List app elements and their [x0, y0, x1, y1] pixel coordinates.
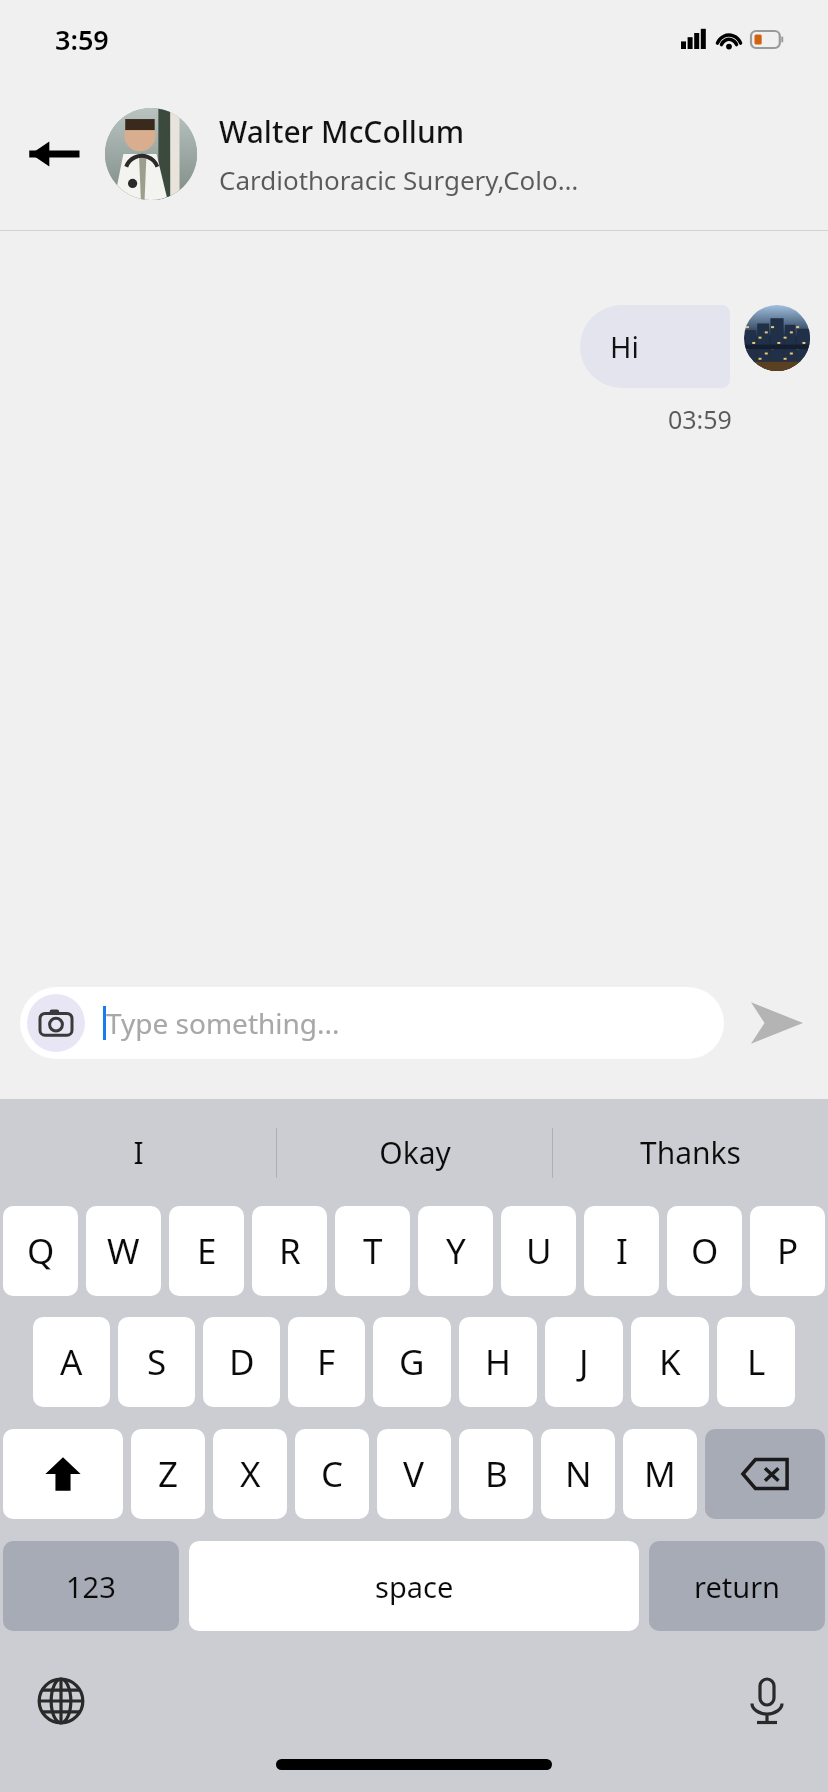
staticText: T — [363, 1227, 383, 1275]
button[interactable]: G — [373, 1317, 451, 1407]
button[interactable]: O — [667, 1206, 742, 1296]
button[interactable]: S — [118, 1317, 195, 1407]
staticText: W — [107, 1227, 140, 1275]
button[interactable]: C — [295, 1429, 369, 1519]
button[interactable]: P — [750, 1206, 825, 1296]
staticText: Z — [158, 1450, 179, 1498]
button[interactable]: Back — [0, 78, 105, 230]
button[interactable]: V — [377, 1429, 451, 1519]
staticText: Y — [446, 1227, 466, 1275]
staticText: A — [60, 1338, 83, 1386]
staticText: F — [317, 1338, 336, 1386]
button[interactable]: T — [335, 1206, 410, 1296]
button[interactable]: M — [623, 1429, 697, 1519]
staticText: N — [565, 1450, 592, 1498]
button[interactable]: D — [203, 1317, 280, 1407]
staticText: L — [747, 1338, 766, 1386]
button[interactable]: N — [541, 1429, 615, 1519]
button[interactable]: Okay — [277, 1099, 552, 1206]
staticText: Cardiothoracic Surgery,Colo… — [219, 162, 579, 197]
staticText: X — [240, 1450, 261, 1498]
button[interactable]: Thanks — [553, 1099, 828, 1206]
button[interactable]: E — [169, 1206, 244, 1296]
button[interactable]: Q — [3, 1206, 78, 1296]
staticText: Hi — [610, 327, 639, 366]
staticText: I — [616, 1227, 628, 1275]
button[interactable]: Hi — [580, 305, 730, 388]
staticText: Type something... — [106, 1004, 340, 1042]
staticText: 03:59 — [668, 402, 732, 436]
staticText: G — [399, 1338, 425, 1386]
staticText: D — [229, 1338, 255, 1386]
staticText: E — [197, 1227, 217, 1275]
staticText: O — [691, 1227, 719, 1275]
staticText: H — [485, 1338, 511, 1386]
button[interactable]: U — [501, 1206, 576, 1296]
button[interactable]: Z — [131, 1429, 205, 1519]
button[interactable]: I — [0, 1099, 276, 1206]
button[interactable]: L — [717, 1317, 795, 1407]
staticText: 123 — [66, 1567, 116, 1606]
button[interactable]: A — [33, 1317, 110, 1407]
staticText: Okay — [379, 1132, 451, 1173]
staticText: J — [579, 1338, 589, 1386]
button[interactable]: F — [288, 1317, 365, 1407]
staticText: S — [147, 1338, 167, 1386]
button[interactable]: R — [252, 1206, 327, 1296]
button[interactable]: Change keyboard — [32, 1672, 90, 1730]
button[interactable]: J — [545, 1317, 623, 1407]
button[interactable]: K — [631, 1317, 709, 1407]
staticText: B — [485, 1450, 508, 1498]
staticText: Q — [27, 1227, 55, 1275]
staticText: P — [777, 1227, 799, 1275]
button[interactable]: W — [86, 1206, 161, 1296]
button[interactable]: Send — [744, 990, 810, 1056]
staticText: space — [375, 1567, 454, 1606]
staticText: R — [279, 1227, 301, 1275]
button[interactable]: space — [189, 1541, 639, 1631]
staticText: Thanks — [640, 1132, 741, 1173]
button[interactable]: Y — [418, 1206, 493, 1296]
staticText: I — [133, 1132, 144, 1173]
button[interactable]: 123 — [3, 1541, 179, 1631]
staticText: M — [644, 1450, 676, 1498]
staticText: 3:59 — [55, 21, 109, 58]
button[interactable]: B — [459, 1429, 533, 1519]
button[interactable]: Camera — [27, 994, 85, 1052]
button[interactable]: Backspace — [705, 1429, 825, 1519]
button[interactable]: Shift — [3, 1429, 123, 1519]
button[interactable]: Camera — [20, 987, 724, 1059]
button[interactable]: Voice input — [738, 1672, 796, 1730]
staticText: V — [403, 1450, 425, 1498]
staticText: C — [321, 1450, 344, 1498]
staticText: Walter McCollum — [219, 111, 465, 152]
button[interactable]: return — [649, 1541, 825, 1631]
staticText: return — [694, 1567, 781, 1606]
staticText: K — [659, 1338, 681, 1386]
button[interactable]: X — [213, 1429, 287, 1519]
button[interactable]: H — [459, 1317, 537, 1407]
staticText: U — [526, 1227, 552, 1275]
button[interactable]: I — [584, 1206, 659, 1296]
